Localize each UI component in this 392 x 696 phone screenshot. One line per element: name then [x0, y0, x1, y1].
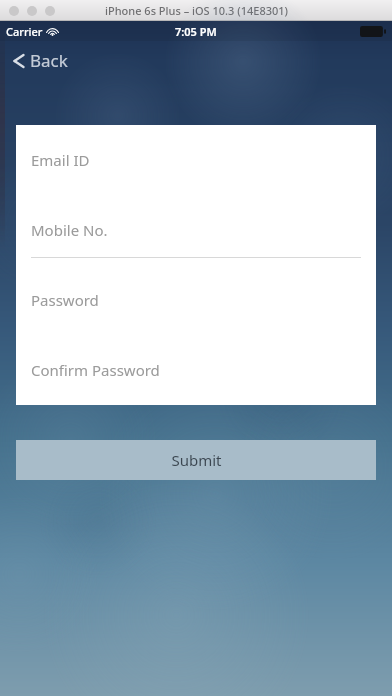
staticText: Back	[30, 49, 68, 72]
button[interactable]: Password	[16, 265, 376, 335]
staticText: Mobile No.	[31, 220, 108, 240]
staticText: 7:05 PM	[175, 24, 217, 39]
button[interactable]: Back	[8, 45, 72, 76]
staticText: Email ID	[31, 150, 90, 170]
staticText: Carrier	[6, 24, 43, 39]
button[interactable]: Confirm Password	[16, 335, 376, 405]
button[interactable]: Submit	[16, 440, 376, 480]
button[interactable]: Mobile No.	[16, 195, 376, 265]
button[interactable]: Email ID	[16, 125, 376, 195]
staticText: Confirm Password	[31, 360, 160, 380]
staticText: Password	[31, 290, 99, 310]
staticText: iPhone 6s Plus – iOS 10.3 (14E8301)	[105, 3, 288, 18]
staticText: Submit	[171, 450, 222, 470]
